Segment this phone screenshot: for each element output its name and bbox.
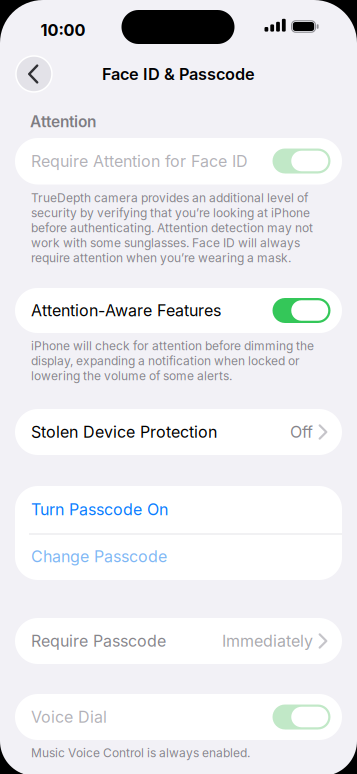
staticText: Off	[290, 422, 313, 442]
staticText: Change Passcode	[31, 547, 167, 566]
staticText: Turn Passcode On	[31, 500, 168, 519]
staticText: 10:00	[40, 20, 85, 40]
staticText: security by verifying that you’re lookin…	[31, 206, 310, 220]
staticText: Attention-Aware Features	[31, 301, 221, 320]
staticText: Require Passcode	[31, 631, 166, 651]
staticText: before authenticating. Attention detecti…	[31, 221, 313, 235]
staticText: iPhone will check for attention before d…	[31, 339, 314, 353]
staticText: TrueDepth camera provides an additional …	[31, 191, 308, 205]
staticText: Require Attention for Face ID	[31, 152, 248, 171]
staticText: Attention	[30, 112, 96, 131]
staticText: require attention when you’re wearing a …	[31, 251, 291, 265]
staticText: Immediately	[222, 631, 313, 651]
staticText: Stolen Device Protection	[31, 422, 217, 442]
staticText: Face ID & Passcode	[102, 64, 255, 84]
staticText: display, expanding a notification when l…	[31, 354, 300, 368]
staticText: Music Voice Control is always enabled.	[31, 746, 250, 760]
staticText: Voice Dial	[31, 707, 107, 727]
staticText: work with some sunglasses. Face ID will …	[31, 236, 300, 250]
staticText: lowering the volume of some alerts.	[31, 369, 232, 383]
